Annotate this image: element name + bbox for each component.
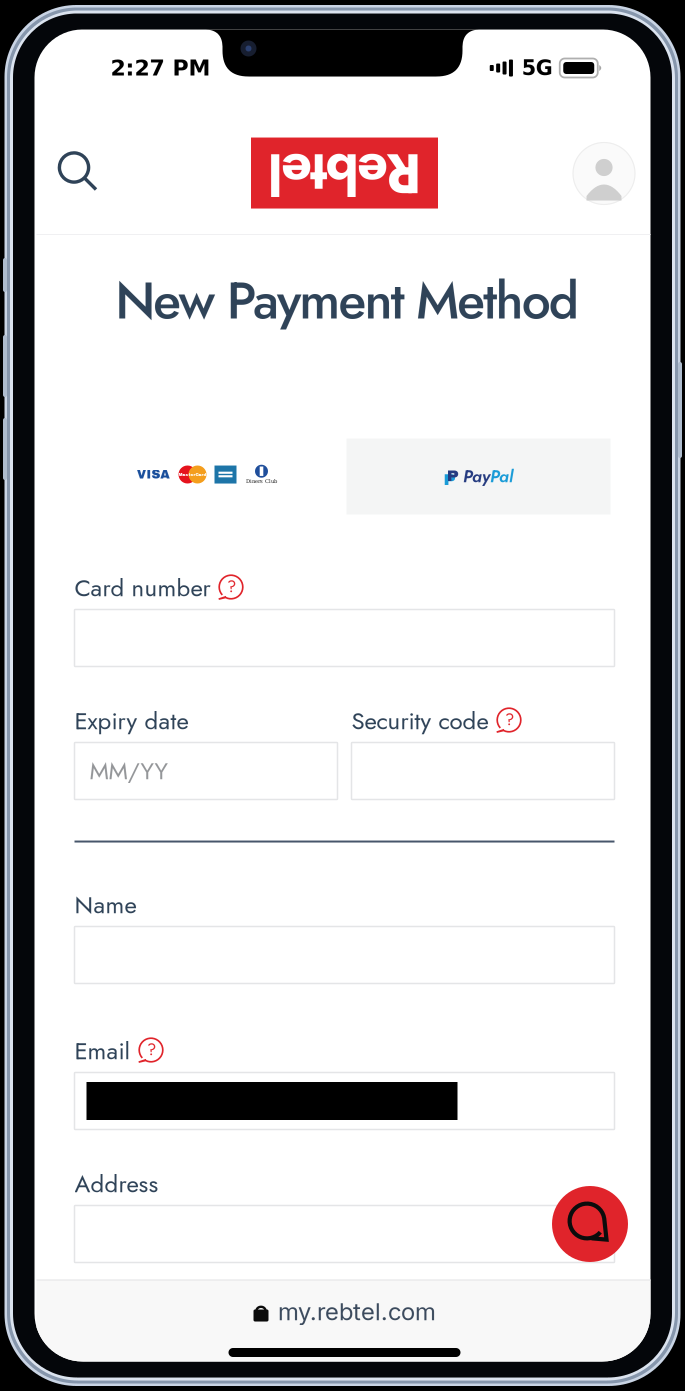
staticText: Name [74,888,136,922]
staticText: MM/YY [89,754,167,788]
staticText: Security code [351,704,488,738]
staticText: Diners Club [246,478,277,484]
staticText: P [443,471,455,489]
staticText: ? [505,707,514,732]
button[interactable] [74,926,614,983]
button[interactable]: MM/YY [74,742,337,799]
button[interactable] [74,1072,614,1129]
staticText: 5G [522,56,553,80]
button[interactable]: Account [573,142,635,204]
staticText: New Payment Method [115,263,579,338]
staticText: ? [147,1037,156,1062]
staticText: Pay [463,464,490,489]
staticText: Card number [74,571,210,605]
staticText: Rebtel [267,134,421,212]
staticText: my.rebtel.com [278,1297,436,1326]
staticText: 2:27 PM [110,55,210,81]
button[interactable]: Address bar, my.rebtel.com [231,1288,458,1335]
staticText: ? [227,574,236,599]
staticText: Expiry date [74,704,188,738]
button[interactable]: Rebtel home [251,137,438,208]
button[interactable]: Pay with credit or debit card [75,436,339,512]
staticText: MasterCard [178,472,206,477]
button[interactable]: Pay with PayPal [346,438,610,514]
button[interactable] [74,1205,614,1262]
staticText: Email [74,1034,130,1068]
button[interactable] [351,742,614,799]
staticText: P [447,467,459,485]
button[interactable]: Chat with support [552,1186,628,1262]
staticText: Pal [490,464,513,489]
staticText: VISA [137,468,170,481]
staticText: Address [74,1167,158,1201]
button[interactable]: Search [58,151,100,193]
